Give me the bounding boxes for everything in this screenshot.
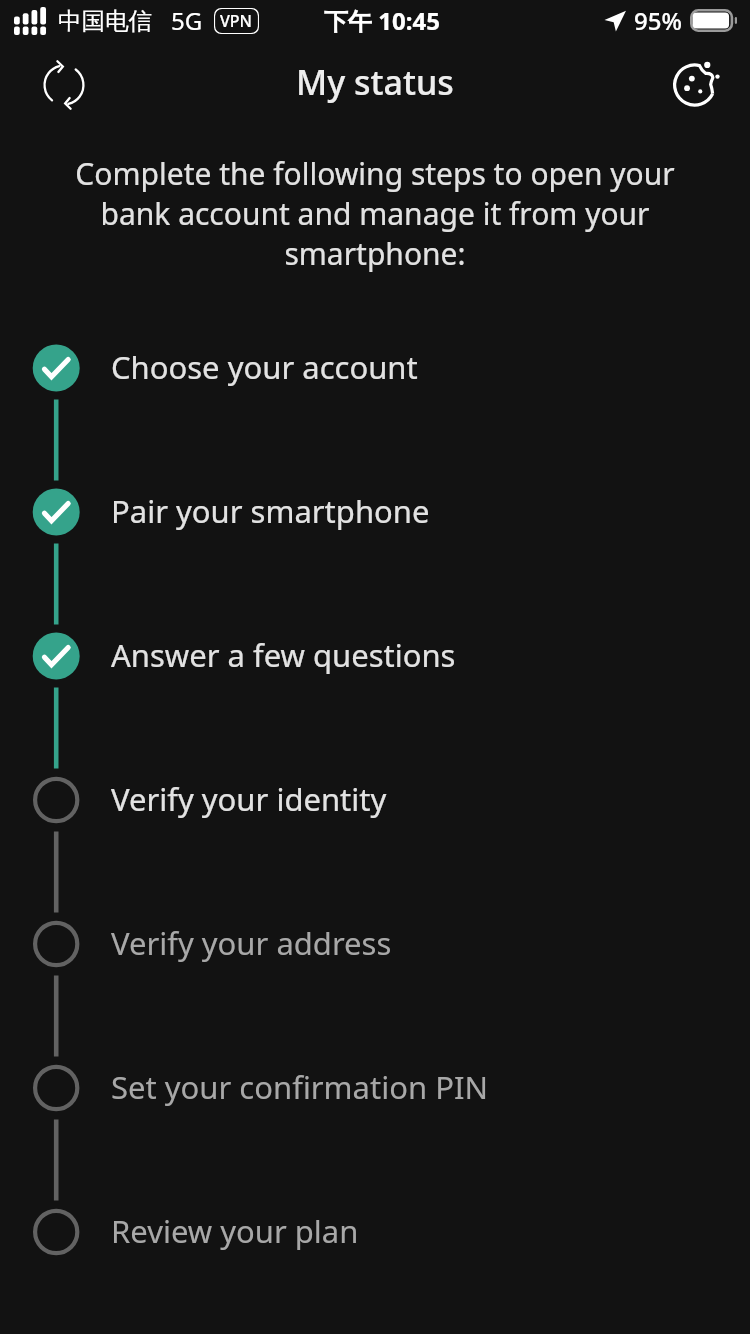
staticText: My status	[296, 59, 454, 105]
button[interactable]: Refresh	[31, 49, 97, 115]
button[interactable]: Choose your account	[0, 344, 750, 488]
button[interactable]: Verify your address	[0, 920, 750, 1064]
staticText: Answer a few questions	[111, 634, 456, 676]
staticText: 5G	[171, 4, 203, 37]
staticText: Set your confirmation PIN	[111, 1066, 488, 1108]
button[interactable]: Pair your smartphone	[0, 488, 750, 632]
staticText: Pair your smartphone	[111, 490, 430, 532]
staticText: 下午 10:45	[324, 4, 440, 37]
staticText: 95%	[634, 4, 682, 37]
staticText: 中国电信	[58, 6, 152, 36]
staticText: Choose your account	[111, 346, 418, 388]
button[interactable]: Cookie settings	[661, 49, 727, 115]
staticText: Review your plan	[111, 1210, 359, 1252]
button[interactable]: Review your plan	[0, 1208, 750, 1334]
staticText: Complete the following steps to open you…	[38, 153, 712, 274]
button[interactable]: Answer a few questions	[0, 632, 750, 776]
staticText: Verify your address	[111, 922, 392, 964]
staticText: Verify your identity	[111, 778, 387, 820]
button[interactable]: Set your confirmation PIN	[0, 1064, 750, 1208]
button[interactable]: Verify your identity	[0, 776, 750, 920]
staticText: VPN	[220, 10, 253, 32]
